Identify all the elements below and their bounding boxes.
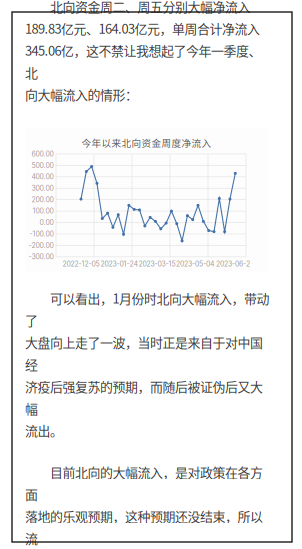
staticText: 2023-05-04 (176, 260, 214, 268)
staticText: 可以看出，1月份时北向大幅流入，带动了 大盘向上走了一波，当时正是来自于对中国经… (25, 288, 269, 439)
staticText: 2023-03-15 (138, 260, 175, 268)
staticText: -300.00 (28, 253, 53, 261)
staticText: -200.00 (28, 241, 53, 250)
staticText: 500.00 (31, 161, 53, 170)
staticText: -100.00 (29, 230, 53, 238)
staticText: 400.00 (31, 173, 53, 181)
staticText: 今年以来北向资金周度净流入 (81, 136, 211, 149)
staticText: 300.00 (31, 184, 53, 192)
staticText: 2022-12-05 (62, 260, 99, 268)
staticText: 0.00 (39, 218, 53, 227)
staticText: 600.00 (31, 150, 53, 158)
staticText: 100.00 (32, 207, 53, 215)
staticText: 2023-01-24 (100, 260, 137, 268)
staticText: 北向资金周二、周五分别大幅净流入 189.83亿元、164.03亿元，单周合计净… (25, 0, 261, 103)
staticText: 目前北向的大幅流入，是对政策在各方面 落地的乐观预期，这种预期还没结束，所以流 … (25, 462, 263, 549)
staticText: 2023-06-2 (216, 260, 250, 268)
staticText: 200.00 (31, 195, 53, 204)
